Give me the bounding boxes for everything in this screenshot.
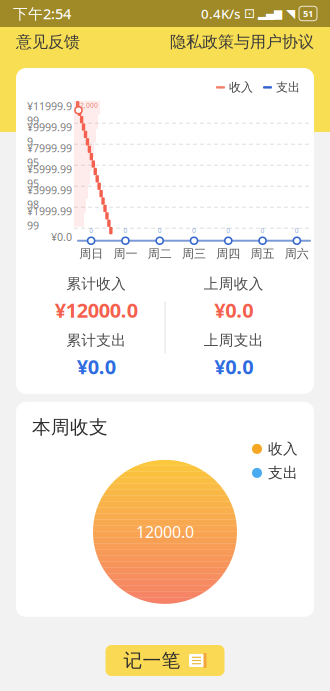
staticText: 累计支出 xyxy=(66,331,126,349)
staticText: ◥ xyxy=(286,7,295,20)
staticText: 周四 xyxy=(216,246,240,261)
staticText: 周二 xyxy=(148,246,172,261)
staticText: 0 xyxy=(226,226,230,235)
staticText: ▂▄▆ xyxy=(258,7,282,19)
staticText: 周一 xyxy=(113,246,137,261)
staticText: 记一笔 xyxy=(123,649,180,672)
staticText: ¥12000.0 xyxy=(55,297,138,323)
staticText: ¥0.0 xyxy=(214,297,253,323)
button[interactable]: 隐私政策与用户协议 xyxy=(168,26,316,58)
staticText: 收入 xyxy=(229,80,253,95)
staticText: ¥0.0 xyxy=(77,353,116,380)
staticText: 0 xyxy=(261,226,265,235)
staticText: 周三 xyxy=(182,246,206,261)
staticText: 0 xyxy=(192,226,196,235)
staticText: 0.4K/s xyxy=(201,5,240,22)
staticText: 意见反馈 xyxy=(16,32,80,52)
staticText: ¥0.0 xyxy=(214,353,253,380)
staticText: 0 xyxy=(295,226,299,235)
staticText: ¥9999.999 xyxy=(27,120,72,148)
staticText: 上周收入 xyxy=(204,275,264,293)
staticText: 下午2:54 xyxy=(13,4,71,23)
staticText: 本周收支 xyxy=(32,416,108,439)
staticText: 0 xyxy=(123,226,127,235)
staticText: 支出 xyxy=(276,80,300,95)
staticText: ¥3999.9998 xyxy=(27,183,72,211)
button[interactable]: 记一笔 xyxy=(105,645,224,676)
staticText: ¥0.0 xyxy=(51,230,72,244)
staticText: 0 xyxy=(89,226,93,235)
staticText: ⊡ xyxy=(244,6,255,21)
staticText: 累计收入 xyxy=(66,275,126,293)
staticText: 收入 xyxy=(268,440,298,458)
staticText: 上周支出 xyxy=(204,331,264,349)
staticText: ¥5999.9995 xyxy=(27,162,72,190)
staticText: 周六 xyxy=(285,246,309,261)
staticText: 周日 xyxy=(79,246,103,261)
staticText: 51 xyxy=(303,7,313,20)
staticText: ¥11999.999 xyxy=(27,99,72,127)
staticText: 周五 xyxy=(251,246,275,261)
staticText: 12,000 xyxy=(76,101,98,110)
staticText: 隐私政策与用户协议 xyxy=(170,32,314,52)
staticText: ¥1999.9999 xyxy=(27,204,72,232)
button[interactable]: 意见反馈 xyxy=(14,26,82,58)
staticText: 支出 xyxy=(268,464,298,482)
staticText: ¥7999.9995 xyxy=(27,141,72,169)
staticText: 0 xyxy=(158,226,162,235)
staticText: 12000.0 xyxy=(136,521,194,542)
